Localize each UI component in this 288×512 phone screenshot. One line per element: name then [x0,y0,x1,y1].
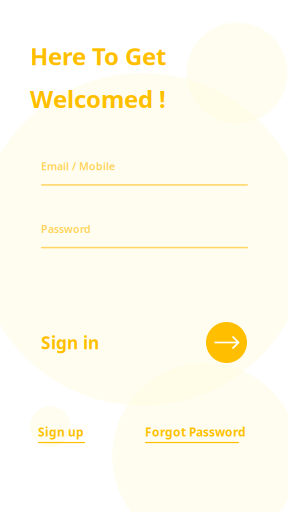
button[interactable]: Sign in [41,331,99,354]
button[interactable]: Forgot Password [145,424,246,443]
staticText: Email / Mobile [41,159,115,173]
button[interactable]: Continue [206,322,247,363]
staticText: Sign up [38,424,84,440]
staticText: Here To Get [30,40,166,72]
staticText: Forgot Password [145,424,246,440]
button[interactable]: Sign up [38,424,85,443]
staticText: Sign in [41,331,99,354]
staticText: Password [41,222,91,236]
staticText: Welcomed ! [30,83,166,115]
